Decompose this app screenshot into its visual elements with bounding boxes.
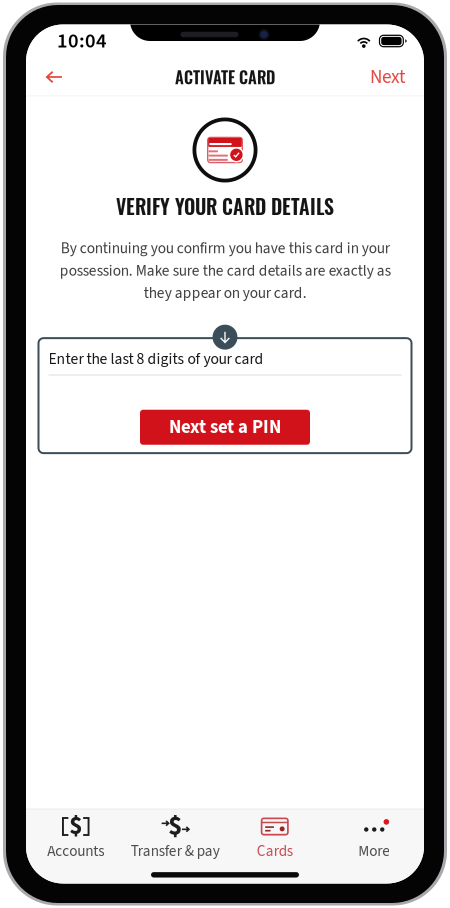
button[interactable]: $ — [26, 808, 125, 869]
staticText: Transfer & pay — [131, 840, 220, 862]
staticText: VERIFY YOUR CARD DETAILS — [116, 191, 334, 221]
button[interactable]: More — [324, 808, 424, 869]
button[interactable]: Next set a PIN — [140, 410, 310, 445]
staticText: By continuing you confirm you have this … — [59, 238, 390, 304]
staticText: Enter the last 8 digits of your card — [48, 348, 263, 370]
button[interactable]: Back — [34, 57, 74, 96]
staticText: $ — [69, 808, 82, 844]
staticText: Next set a PIN — [169, 414, 281, 441]
staticText: 10:04 — [57, 26, 107, 56]
staticText: Accounts — [47, 840, 104, 862]
button[interactable]: $ — [125, 808, 225, 869]
button[interactable]: Cards — [225, 808, 324, 869]
staticText: Next — [370, 63, 405, 91]
staticText: Cards — [257, 840, 293, 862]
button[interactable]: Next — [364, 57, 411, 96]
staticText: $ — [168, 807, 182, 845]
staticText: ACTIVATE CARD — [175, 65, 275, 89]
staticText: More — [358, 840, 390, 862]
